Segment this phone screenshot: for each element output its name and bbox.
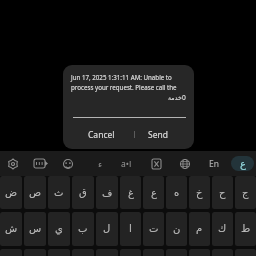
button[interactable]: س: [24, 212, 46, 246]
staticText: ح: [219, 187, 226, 199]
staticText: ل: [103, 223, 111, 235]
button[interactable]: ح: [212, 176, 233, 209]
button[interactable]: ب: [72, 212, 94, 246]
staticText: ث: [54, 187, 64, 199]
staticText: Send: [148, 129, 168, 141]
button[interactable]: م: [189, 212, 210, 246]
button[interactable]: غ: [120, 176, 141, 209]
staticText: Cancel: [88, 129, 115, 141]
staticText: ي: [55, 223, 63, 235]
staticText: ا: [129, 223, 132, 235]
button[interactable]: Emoji: [55, 151, 81, 176]
button[interactable]: ك: [212, 212, 233, 246]
button[interactable]: ت: [143, 212, 164, 246]
staticText: غ: [128, 187, 134, 199]
staticText: ع: [151, 187, 157, 199]
button[interactable]: Clipboard: [143, 151, 169, 176]
staticText: ض: [5, 187, 18, 199]
button[interactable]: ص: [24, 176, 46, 209]
button[interactable]: Send: [130, 120, 185, 149]
staticText: ن: [173, 223, 181, 235]
button[interactable]: Arabic layout: [231, 156, 254, 171]
staticText: ت: [149, 223, 159, 235]
staticText: خدمة: [168, 94, 182, 101]
button[interactable]: خ: [189, 176, 210, 209]
staticText: En: [209, 158, 219, 170]
button[interactable]: ن: [166, 212, 187, 246]
staticText: Jun 17, 2025 1:31:11 AM: Unable to: [71, 73, 172, 81]
staticText: م: [196, 223, 203, 235]
button[interactable]: ج: [235, 176, 256, 209]
button[interactable]: ا: [120, 212, 141, 246]
staticText: ه: [174, 187, 180, 199]
staticText: ك: [218, 223, 227, 235]
button[interactable]: Handwriting: [87, 151, 113, 176]
staticText: ص: [29, 187, 42, 199]
staticText: ء: [98, 159, 103, 169]
staticText: ج: [242, 187, 249, 199]
button[interactable]: En: [200, 151, 228, 176]
button[interactable]: Languages: [172, 151, 198, 176]
staticText: a•ا: [121, 158, 132, 170]
button[interactable]: GIF: [28, 151, 54, 176]
button[interactable]: ش: [0, 212, 22, 246]
staticText: ط: [241, 223, 251, 235]
staticText: ف: [102, 187, 113, 199]
button[interactable]: ه: [166, 176, 187, 209]
button[interactable]: ع: [143, 176, 164, 209]
button[interactable]: ق: [72, 176, 94, 209]
button[interactable]: ث: [48, 176, 70, 209]
button[interactable]: ي: [48, 212, 70, 246]
staticText: ش: [5, 223, 18, 235]
button[interactable]: Translate: [113, 151, 139, 176]
staticText: خ: [196, 187, 203, 199]
button[interactable]: ط: [235, 212, 256, 246]
staticText: س: [29, 223, 42, 235]
button[interactable]: ض: [0, 176, 22, 209]
staticText: 0: [182, 93, 186, 102]
button[interactable]: ف: [96, 176, 118, 209]
staticText: ق: [79, 187, 87, 199]
staticText: process your request. Please call the: [71, 83, 177, 91]
staticText: ب: [78, 223, 88, 235]
staticText: ع: [240, 158, 246, 170]
button[interactable]: ل: [96, 212, 118, 246]
button[interactable]: Cancel: [68, 120, 135, 149]
button[interactable]: Settings: [0, 151, 26, 176]
